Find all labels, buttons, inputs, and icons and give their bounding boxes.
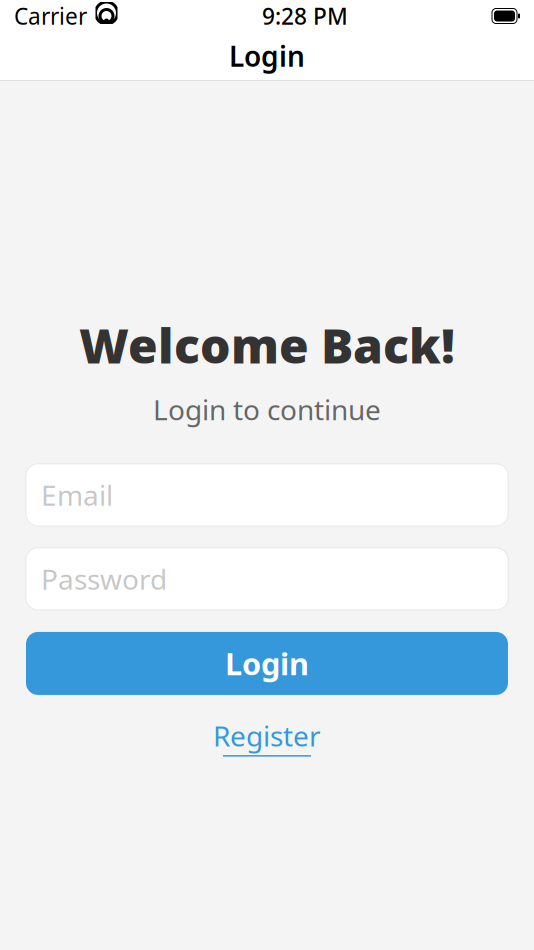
button[interactable]: Login	[26, 632, 508, 695]
staticText: Carrier	[14, 1, 87, 31]
staticText: Login	[225, 643, 309, 684]
staticText: Login to continue	[153, 391, 381, 428]
staticText: Login	[229, 37, 305, 75]
button[interactable]: Register	[203, 715, 331, 759]
staticText: Password	[41, 560, 167, 597]
staticText: 9:28 PM	[262, 1, 348, 31]
staticText: Email	[41, 476, 113, 513]
staticText: Register	[213, 717, 321, 754]
staticText: Welcome Back!	[79, 313, 455, 377]
